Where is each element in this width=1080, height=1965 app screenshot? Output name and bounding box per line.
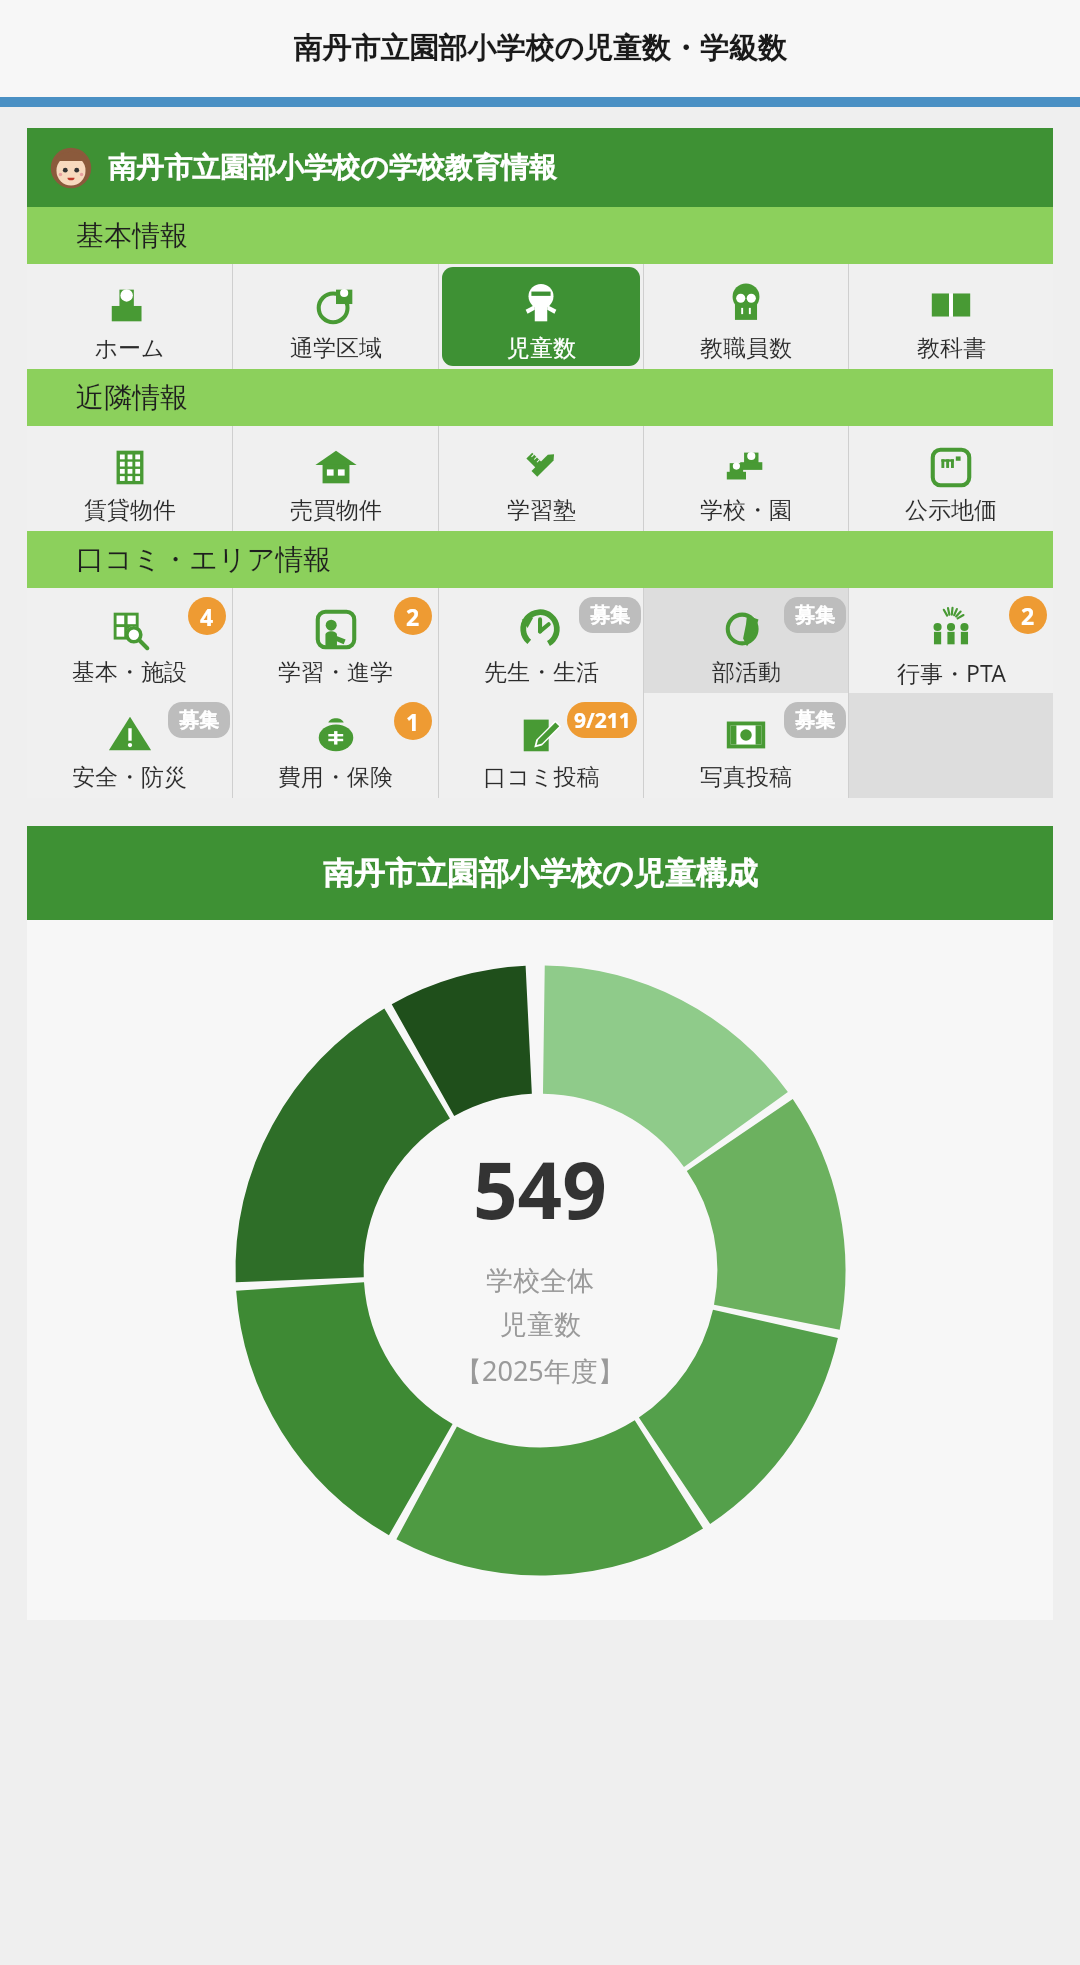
staticText: 近隣情報 bbox=[76, 380, 188, 415]
staticText: 学習塾 bbox=[507, 496, 576, 525]
staticText: 基本・施設 bbox=[72, 658, 187, 687]
button[interactable]: 学校・園 bbox=[644, 426, 848, 531]
staticText: 2 bbox=[406, 601, 420, 632]
staticText: 公示地価 bbox=[905, 496, 997, 525]
button[interactable]: 2 bbox=[849, 588, 1053, 693]
button[interactable]: 通学区域 bbox=[233, 264, 438, 369]
staticText: 学校全体 bbox=[486, 1264, 594, 1298]
staticText: 行事・PTA bbox=[897, 657, 1006, 688]
staticText: 売買物件 bbox=[290, 496, 382, 525]
staticText: 賃貸物件 bbox=[84, 496, 176, 525]
staticText: 教職員数 bbox=[700, 334, 792, 363]
staticText: 安全・防災 bbox=[72, 763, 187, 792]
button[interactable]: 公示地価 bbox=[849, 426, 1053, 531]
staticText: 9/211 bbox=[574, 706, 631, 735]
button[interactable]: 2 bbox=[233, 588, 438, 693]
staticText: 児童数 bbox=[500, 1308, 581, 1342]
staticText: 募集 bbox=[179, 708, 219, 733]
staticText: 基本情報 bbox=[76, 218, 188, 253]
button[interactable]: 売買物件 bbox=[233, 426, 438, 531]
staticText: 549 bbox=[473, 1136, 607, 1242]
staticText: 南丹市立園部小学校の児童数・学級数 bbox=[293, 30, 787, 67]
staticText: 南丹市立園部小学校の学校教育情報 bbox=[108, 150, 557, 185]
staticText: 募集 bbox=[795, 603, 835, 628]
staticText: 募集 bbox=[590, 603, 630, 628]
button[interactable]: 児童数 bbox=[439, 264, 643, 369]
button[interactable]: 教科書 bbox=[849, 264, 1053, 369]
button[interactable]: 南丹市立園部小学校の学校教育情報 bbox=[27, 128, 1053, 207]
button[interactable]: 教職員数 bbox=[644, 264, 848, 369]
button[interactable]: 募集 bbox=[27, 693, 232, 798]
staticText: 学習・進学 bbox=[278, 658, 393, 687]
button[interactable]: 9/211 bbox=[439, 693, 643, 798]
staticText: 募集 bbox=[795, 708, 835, 733]
button[interactable]: 4 bbox=[27, 588, 232, 693]
staticText: 南丹市立園部小学校の児童構成 bbox=[323, 854, 758, 893]
staticText: 通学区域 bbox=[290, 334, 382, 363]
staticText: 費用・保険 bbox=[278, 763, 393, 792]
staticText: ホーム bbox=[94, 334, 165, 363]
staticText: 児童数 bbox=[507, 334, 576, 363]
staticText: 部活動 bbox=[712, 658, 781, 687]
staticText: 口コミ投稿 bbox=[483, 763, 600, 792]
staticText: 口コミ・エリア情報 bbox=[76, 542, 332, 577]
staticText: 学校・園 bbox=[700, 496, 792, 525]
staticText: 写真投稿 bbox=[700, 763, 792, 792]
staticText: 【2025年度】 bbox=[455, 1352, 625, 1389]
button[interactable]: 募集 bbox=[439, 588, 643, 693]
button[interactable]: 学習塾 bbox=[439, 426, 643, 531]
button[interactable]: 募集 bbox=[644, 588, 848, 693]
staticText: 先生・生活 bbox=[484, 658, 599, 687]
staticText: 教科書 bbox=[917, 334, 986, 363]
button[interactable]: 1 bbox=[233, 693, 438, 798]
button[interactable]: 賃貸物件 bbox=[27, 426, 232, 531]
staticText: 4 bbox=[200, 601, 214, 632]
staticText: 1 bbox=[406, 706, 420, 737]
button[interactable]: ホーム bbox=[27, 264, 232, 369]
staticText: 2 bbox=[1021, 600, 1035, 631]
button[interactable]: 募集 bbox=[644, 693, 848, 798]
